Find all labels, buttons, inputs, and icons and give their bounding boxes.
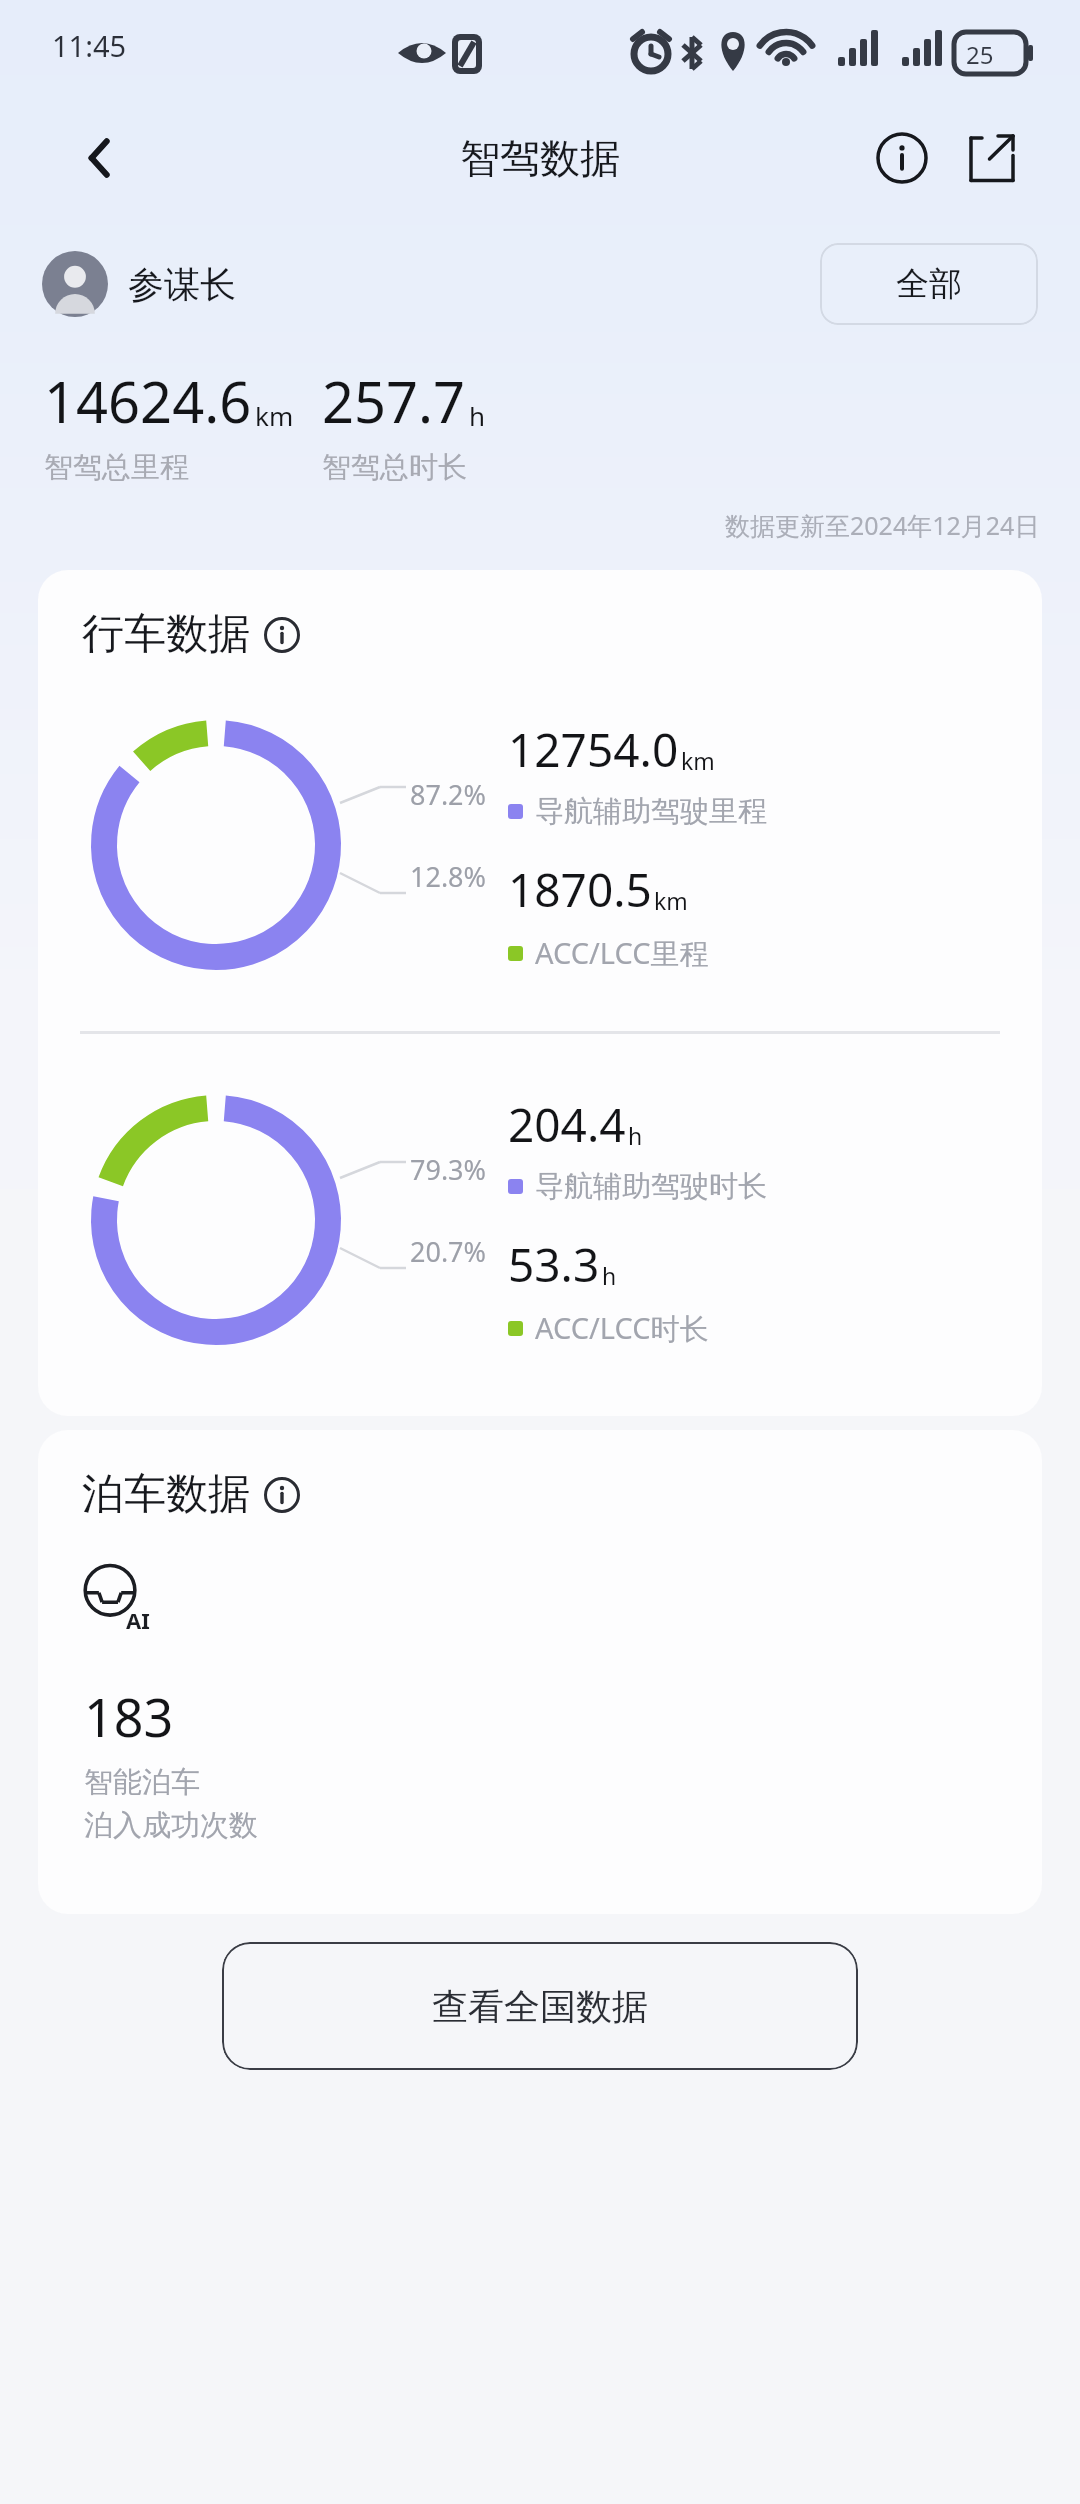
staticText: 14624.6 [44, 363, 252, 439]
button[interactable]: 行车数据 [82, 608, 300, 661]
staticText: 泊入成功次数 [84, 1807, 258, 1844]
button[interactable]: Share [956, 122, 1028, 194]
button[interactable]: Info [866, 122, 938, 194]
staticText: 11:45 [52, 26, 127, 65]
button[interactable]: 参谋长 [42, 251, 236, 317]
staticText: 1870.5 [508, 858, 652, 921]
staticText: km [654, 885, 688, 916]
staticText: ACC/LCC时长 [535, 1308, 709, 1348]
button[interactable]: 全部 [820, 243, 1038, 325]
staticText: 183 [84, 1681, 174, 1752]
staticText: 12.8% [410, 858, 487, 895]
staticText: 204.4 [508, 1093, 626, 1156]
staticText: 导航辅助驾驶里程 [535, 793, 767, 830]
staticText: h [602, 1260, 617, 1291]
staticText: AI [126, 1605, 150, 1635]
staticText: 智驾总时长 [322, 449, 467, 486]
staticText: h [628, 1120, 643, 1151]
staticText: 53.3 [508, 1233, 600, 1296]
staticText: 智能泊车 [84, 1764, 200, 1801]
staticText: 87.2% [410, 776, 487, 813]
staticText: km [255, 398, 294, 433]
staticText: ACC/LCC里程 [535, 933, 709, 973]
staticText: 智驾数据 [460, 133, 620, 183]
staticText: 查看全国数据 [432, 1984, 648, 2029]
staticText: 泊车数据 [82, 1468, 250, 1521]
staticText: 12754.0 [508, 718, 679, 781]
staticText: 行车数据 [82, 608, 250, 661]
staticText: 25 [966, 38, 994, 71]
staticText: 导航辅助驾驶时长 [535, 1168, 767, 1205]
button[interactable]: 泊车数据 [82, 1468, 300, 1521]
staticText: km [681, 745, 715, 776]
staticText: 智驾总里程 [44, 449, 189, 486]
staticText: 20.7% [410, 1233, 487, 1270]
button[interactable]: 查看全国数据 [222, 1942, 858, 2070]
staticText: 257.7 [322, 363, 466, 439]
staticText: 全部 [896, 263, 962, 305]
staticText: 79.3% [410, 1151, 487, 1188]
button[interactable]: Back [62, 120, 138, 196]
staticText: h [469, 398, 486, 433]
staticText: 参谋长 [128, 262, 236, 307]
staticText: 数据更新至2024年12月24日 [725, 508, 1040, 542]
